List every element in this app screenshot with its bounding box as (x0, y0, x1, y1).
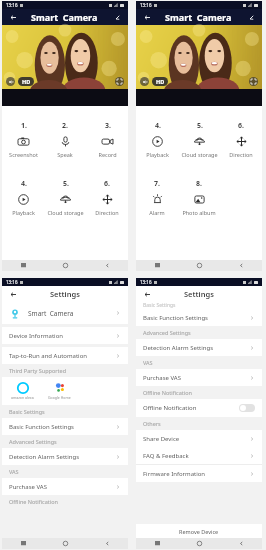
button[interactable]: Share Device (136, 430, 262, 447)
staticText: Playback (12, 209, 35, 216)
button[interactable]: 5. (45, 177, 86, 218)
staticText: 4. (21, 179, 27, 189)
button[interactable]: Back (220, 538, 262, 549)
staticText: Firmware Information (143, 470, 206, 478)
button[interactable]: 6. (93, 177, 121, 218)
staticText: 5. (197, 121, 203, 131)
button[interactable]: Fullscreen (249, 77, 258, 86)
staticText: Basic Settings (9, 408, 45, 415)
button[interactable]: Edit (111, 11, 123, 23)
button[interactable]: Purchase VAS (136, 369, 262, 386)
button[interactable]: Purchase VAS (2, 478, 128, 495)
button[interactable]: Home (44, 260, 86, 271)
button[interactable]: Back (141, 11, 153, 23)
button[interactable]: HD (18, 77, 34, 86)
staticText: VAS (143, 359, 153, 366)
button[interactable]: Detection Alarm Settings (2, 448, 128, 465)
button[interactable]: Device Information (2, 327, 128, 344)
button[interactable]: 3. (96, 119, 119, 160)
button[interactable]: Recents (2, 260, 44, 271)
staticText: Tap-to-Run and Automation (9, 352, 87, 360)
button[interactable]: 7. (147, 177, 167, 218)
staticText: Others (143, 420, 161, 427)
staticText: 1. (21, 121, 27, 131)
button[interactable]: 4. (10, 177, 37, 218)
button[interactable]: Back (86, 538, 128, 549)
staticText: 13:16 (6, 2, 18, 8)
button[interactable]: FAQ & Feedback (136, 447, 262, 464)
staticText: 8. (196, 179, 202, 189)
button[interactable]: Back (7, 288, 19, 300)
button[interactable]: Back (220, 260, 262, 271)
button[interactable]: 4. (144, 119, 171, 160)
button[interactable]: 5. (179, 119, 220, 160)
button[interactable]: Fullscreen (115, 77, 124, 86)
button[interactable]: Firmware Information (136, 465, 262, 482)
staticText: Smart Camera (31, 11, 98, 23)
staticText: Basic Settings (143, 302, 176, 309)
staticText: Photo album (182, 209, 216, 216)
button[interactable]: Basic Function Settings (136, 309, 262, 326)
button[interactable]: Basic Function Settings (2, 418, 128, 435)
staticText: Google Home (48, 395, 71, 400)
staticText: Device Information (9, 332, 64, 340)
staticText: Detection Alarm Settings (143, 344, 214, 352)
staticText: Basic Function Settings (143, 314, 208, 322)
staticText: HD (156, 78, 165, 85)
button[interactable]: 8. (180, 177, 218, 218)
button[interactable]: 1. (7, 119, 40, 160)
button[interactable]: 2. (55, 119, 75, 160)
staticText: Speak (57, 151, 73, 158)
staticText: Record (98, 151, 117, 158)
button[interactable]: amazon alexa (11, 381, 34, 400)
button[interactable]: Home (44, 538, 86, 549)
staticText: FAQ & Feedback (143, 452, 189, 460)
staticText: Cloud storage (181, 151, 218, 158)
button[interactable]: Recents (2, 538, 44, 549)
button[interactable]: Back (86, 260, 128, 271)
staticText: Purchase VAS (143, 374, 181, 382)
button[interactable]: Smart Camera (2, 302, 128, 324)
staticText: 13:16 (140, 279, 152, 285)
button[interactable]: Remove Device (136, 524, 262, 538)
button[interactable]: Tap-to-Run and Automation (2, 347, 128, 364)
staticText: 7. (154, 179, 160, 189)
staticText: Smart Camera (28, 309, 74, 318)
staticText: 3. (105, 121, 111, 131)
staticText: Settings (50, 289, 80, 299)
button[interactable]: Edit (245, 11, 257, 23)
staticText: Screenshot (9, 151, 38, 158)
button[interactable]: Back (141, 288, 153, 300)
staticText: Settings (184, 289, 214, 299)
staticText: Direction (95, 209, 119, 216)
staticText: Third Party Supported (9, 367, 67, 374)
staticText: Alarm (149, 209, 165, 216)
button[interactable]: Recents (136, 260, 178, 271)
staticText: Remove Device (179, 528, 219, 535)
button[interactable]: Mute (140, 77, 149, 86)
button[interactable]: Home (178, 260, 220, 271)
staticText: amazon alexa (11, 395, 34, 400)
staticText: Direction (229, 151, 253, 158)
button[interactable]: Home (178, 538, 220, 549)
staticText: Playback (146, 151, 169, 158)
button[interactable]: Google Home (48, 381, 71, 400)
button[interactable]: Detection Alarm Settings (136, 339, 262, 356)
staticText: Advanced Settings (143, 329, 191, 336)
staticText: 2. (62, 121, 68, 131)
staticText: 5. (63, 179, 69, 189)
staticText: HD (22, 78, 31, 85)
button[interactable]: Recents (136, 538, 178, 549)
button[interactable]: Mute (6, 77, 15, 86)
staticText: 13:16 (140, 2, 152, 8)
staticText: Advanced Settings (9, 438, 57, 445)
button[interactable]: Offline Notification (136, 399, 262, 417)
staticText: 13:16 (6, 279, 18, 285)
button[interactable]: HD (152, 77, 168, 86)
staticText: Basic Function Settings (9, 423, 74, 431)
button[interactable]: Back (7, 11, 19, 23)
staticText: Purchase VAS (9, 483, 47, 491)
button[interactable]: 6. (227, 119, 255, 160)
staticText: Offline Notification (9, 498, 58, 505)
staticText: 6. (104, 179, 110, 189)
